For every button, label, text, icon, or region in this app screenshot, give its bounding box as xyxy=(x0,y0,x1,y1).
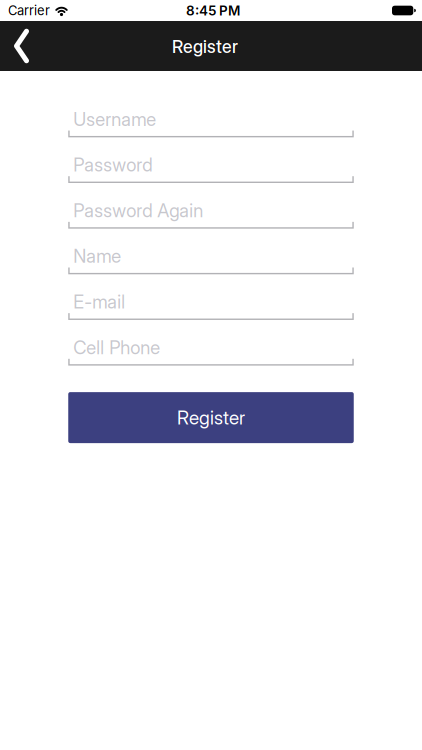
staticText: Username xyxy=(73,108,156,130)
staticText: Name xyxy=(73,245,121,267)
staticText: Register xyxy=(177,406,245,429)
button[interactable]: Back xyxy=(0,21,40,71)
button[interactable]: Cell Phone text field xyxy=(68,320,354,365)
button[interactable]: Name text field xyxy=(68,229,354,274)
staticText: E-mail xyxy=(73,291,125,313)
staticText: Cell Phone xyxy=(73,336,160,359)
button[interactable]: Password Again text field xyxy=(68,183,354,229)
button[interactable]: Password text field xyxy=(68,137,354,183)
button[interactable]: Register xyxy=(68,392,354,443)
staticText: Register xyxy=(172,36,238,57)
staticText: Password Again xyxy=(73,199,203,222)
staticText: Password xyxy=(73,154,152,176)
staticText: Carrier xyxy=(8,3,50,18)
button[interactable]: Username text field xyxy=(68,92,354,137)
staticText: 8:45 PM xyxy=(186,2,240,19)
button[interactable]: E-mail text field xyxy=(68,274,354,320)
